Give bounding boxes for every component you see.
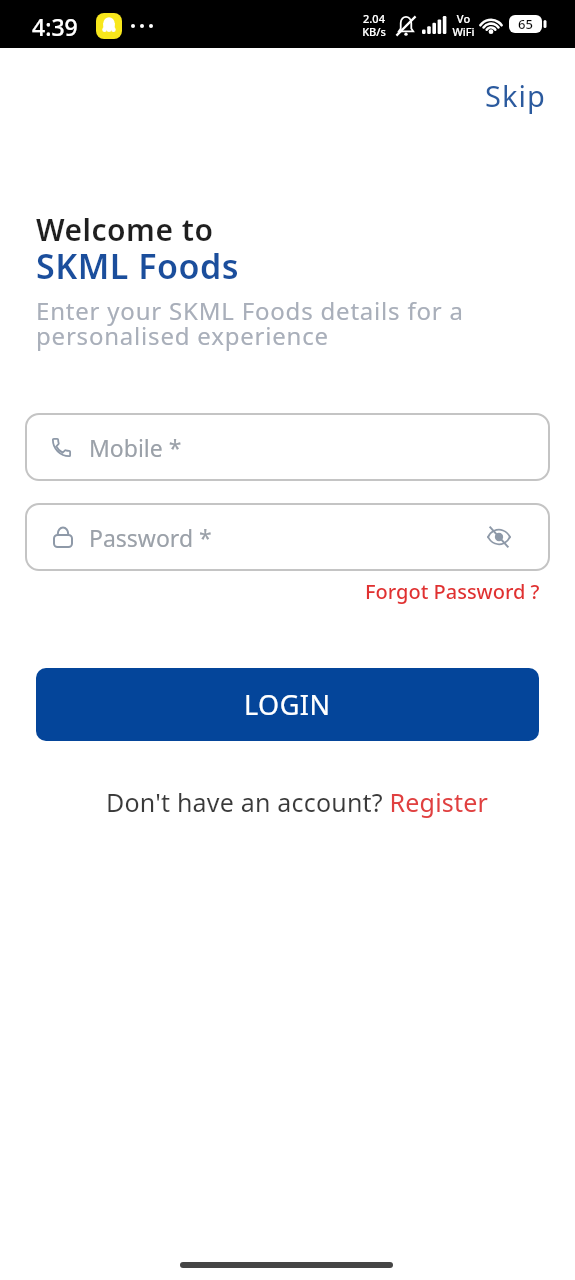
staticText: Vo WiFi: [452, 11, 475, 39]
staticText: Mobile *: [89, 432, 182, 463]
staticText: LOGIN: [244, 686, 331, 723]
button[interactable]: Forgot Password ?: [365, 578, 540, 605]
button[interactable]: LOGIN: [36, 668, 539, 741]
button[interactable]: Password *: [25, 503, 550, 571]
staticText: Enter your SKML Foods details for a pers…: [36, 294, 464, 352]
staticText: Skip: [485, 76, 546, 115]
staticText: 65: [518, 15, 533, 33]
staticText: Forgot Password ?: [365, 578, 540, 605]
staticText: SKML Foods: [36, 243, 239, 289]
staticText: 2.04 KB/s: [362, 11, 386, 39]
button[interactable]: Skip: [485, 76, 546, 115]
staticText: 4:39: [32, 11, 78, 42]
staticText: Don't have an account? Register: [106, 785, 489, 819]
button[interactable]: Mobile *: [25, 413, 550, 481]
button[interactable]: Don't have an account? Register: [106, 785, 489, 819]
staticText: Password *: [89, 522, 212, 553]
staticText: Welcome to: [36, 209, 214, 250]
